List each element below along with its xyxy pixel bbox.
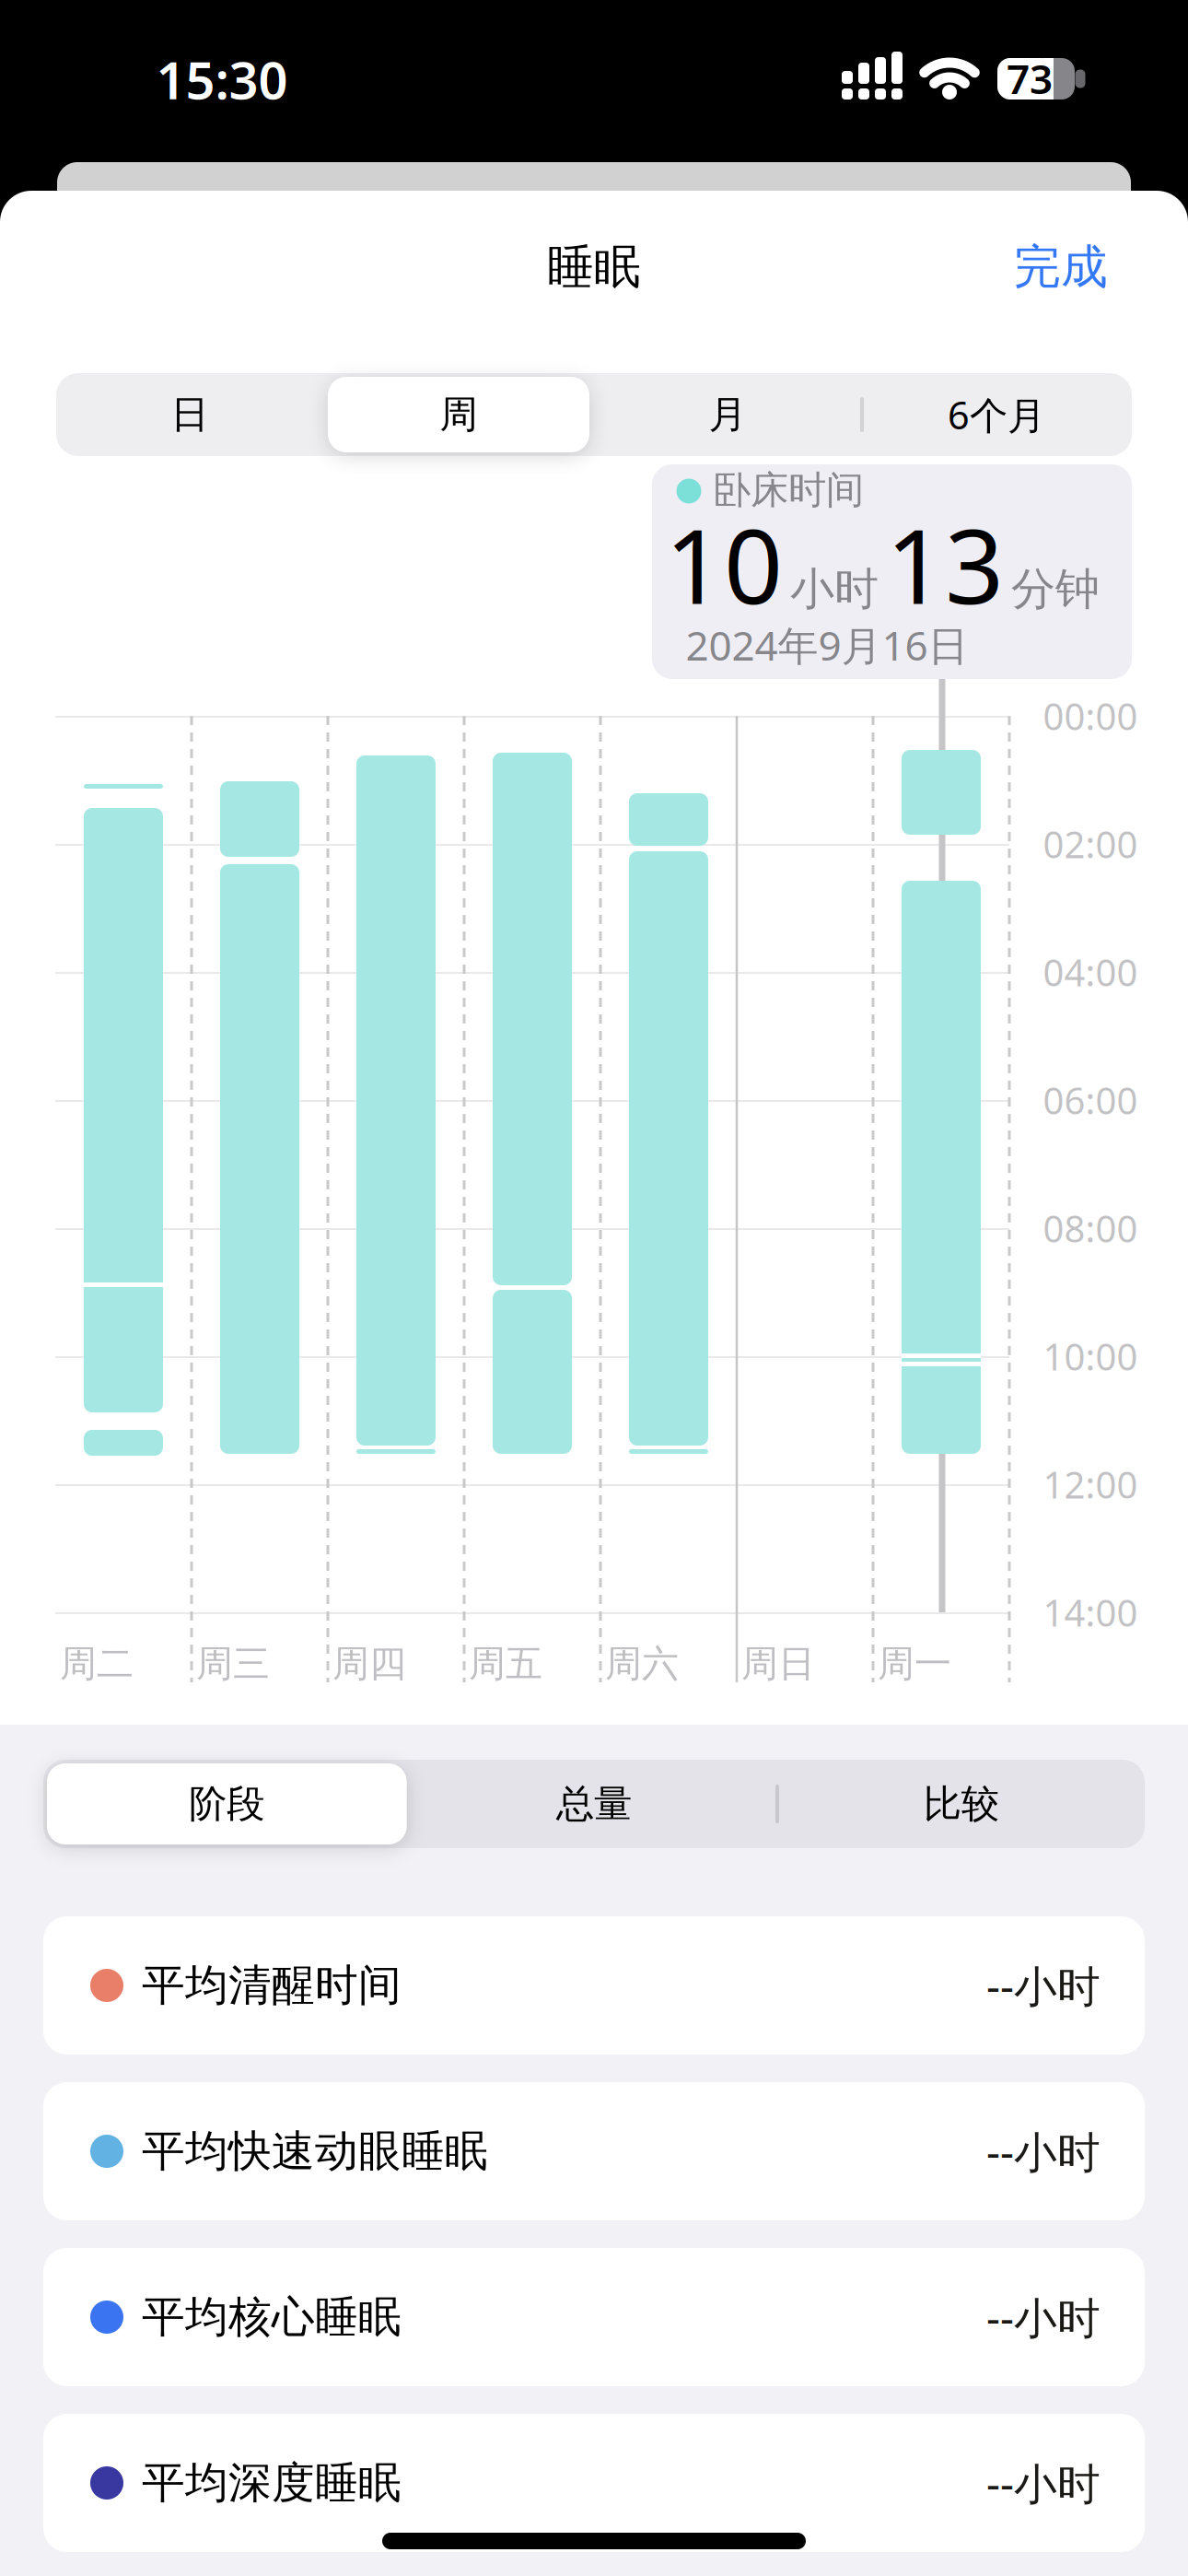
staticText: 10:00 <box>1043 1332 1138 1381</box>
staticText: 04:00 <box>1043 947 1138 996</box>
staticText: --小时 <box>986 2289 1101 2346</box>
button[interactable]: 日 <box>55 373 324 456</box>
staticText: 14:00 <box>1043 1588 1138 1637</box>
staticText: 周三 <box>196 1641 270 1686</box>
staticText: 平均清醒时间 <box>142 1959 402 2012</box>
staticText: 周 <box>440 391 478 438</box>
staticText: 平均深度睡眠 <box>142 2457 402 2509</box>
staticText: 阶段 <box>189 1781 265 1827</box>
button[interactable]: 月 <box>593 373 862 456</box>
staticText: 月 <box>709 391 746 438</box>
button[interactable]: 6个月 <box>862 373 1131 456</box>
staticText: 12:00 <box>1043 1460 1138 1509</box>
staticText: 周四 <box>332 1641 406 1686</box>
staticText: 周二 <box>60 1641 134 1686</box>
staticText: 日 <box>171 391 209 438</box>
button[interactable]: 比较 <box>778 1760 1145 1848</box>
staticText: 周五 <box>469 1641 542 1686</box>
staticText: --小时 <box>986 1957 1101 2014</box>
staticText: 周日 <box>741 1641 815 1686</box>
staticText: 周一 <box>878 1641 951 1686</box>
staticText: 00:00 <box>1043 691 1138 740</box>
staticText: 02:00 <box>1043 819 1138 868</box>
staticText: 平均快速动眼睡眠 <box>142 2125 488 2178</box>
staticText: 6个月 <box>948 389 1045 440</box>
staticText: 卧床时间 <box>713 467 864 514</box>
button[interactable]: 周 <box>324 373 593 456</box>
staticText: 73 <box>1007 51 1053 105</box>
staticText: 周六 <box>605 1641 679 1686</box>
staticText: 15:30 <box>156 45 288 114</box>
staticText: 06:00 <box>1043 1076 1138 1124</box>
button[interactable]: 总量 <box>410 1760 778 1848</box>
staticText: 睡眠 <box>547 239 641 296</box>
staticText: 2024年9月16日 <box>686 618 968 672</box>
staticText: 10 <box>665 495 783 632</box>
staticText: 分钟 <box>1011 562 1100 616</box>
staticText: 08:00 <box>1043 1204 1138 1253</box>
staticText: 小时 <box>790 562 879 616</box>
staticText: 完成 <box>1014 239 1108 296</box>
button[interactable]: 完成 <box>978 230 1144 304</box>
staticText: 总量 <box>556 1781 632 1827</box>
staticText: 平均核心睡眠 <box>142 2291 402 2343</box>
staticText: --小时 <box>986 2123 1101 2180</box>
staticText: 比较 <box>923 1781 999 1827</box>
staticText: --小时 <box>986 2454 1101 2512</box>
button[interactable]: 阶段 <box>43 1760 410 1848</box>
staticText: 13 <box>886 495 1004 632</box>
